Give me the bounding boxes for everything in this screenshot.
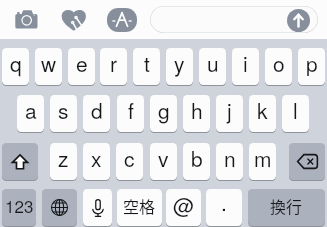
staticText: d xyxy=(91,95,103,125)
button[interactable]: b xyxy=(183,143,210,180)
staticText: o xyxy=(273,48,285,78)
staticText: v xyxy=(158,143,169,173)
staticText: 123 xyxy=(5,193,34,217)
button[interactable]: q xyxy=(2,48,29,85)
staticText: w xyxy=(41,48,57,78)
button[interactable]: g xyxy=(150,95,177,132)
staticText: u xyxy=(207,48,219,78)
staticText: . xyxy=(221,189,227,217)
button[interactable]: v xyxy=(150,143,177,180)
button[interactable]: l xyxy=(282,95,309,132)
button[interactable]: p xyxy=(298,48,325,85)
staticText: h xyxy=(191,95,203,125)
button[interactable]: a xyxy=(17,95,44,132)
button[interactable]: App Store xyxy=(107,8,137,32)
button[interactable]: . xyxy=(206,189,242,226)
button[interactable]: 空格 xyxy=(117,189,162,226)
staticText: r xyxy=(110,48,117,78)
button[interactable]: x xyxy=(83,143,110,180)
button[interactable]: d xyxy=(83,95,110,132)
button[interactable]: o xyxy=(265,48,292,85)
button[interactable]: m xyxy=(249,143,276,180)
button[interactable]: f xyxy=(117,95,144,132)
button[interactable]: Shift xyxy=(2,143,38,180)
staticText: e xyxy=(76,48,88,78)
button[interactable]: z xyxy=(50,143,77,180)
button[interactable]: u xyxy=(199,48,226,85)
button[interactable]: Digital Touch xyxy=(59,4,89,34)
button[interactable]: y xyxy=(166,48,193,85)
staticText: a xyxy=(25,95,37,125)
staticText: q xyxy=(10,48,22,78)
button[interactable]: c xyxy=(116,143,143,180)
staticText: j xyxy=(227,95,232,125)
staticText: b xyxy=(191,143,203,173)
staticText: z xyxy=(58,143,69,173)
staticText: m xyxy=(254,143,272,173)
button[interactable]: Dictation xyxy=(83,189,112,226)
staticText: k xyxy=(257,95,268,125)
button[interactable]: w xyxy=(35,48,62,85)
button[interactable]: h xyxy=(183,95,210,132)
staticText: l xyxy=(293,95,298,125)
button[interactable]: Send xyxy=(287,9,310,32)
staticText: g xyxy=(158,95,170,125)
staticText: 換行 xyxy=(270,194,303,217)
button[interactable] xyxy=(150,6,318,33)
button[interactable]: @ xyxy=(166,189,201,226)
button[interactable]: Camera xyxy=(11,4,41,34)
button[interactable]: r xyxy=(100,48,127,85)
button[interactable]: s xyxy=(50,95,77,132)
staticText: @ xyxy=(173,190,195,220)
staticText: x xyxy=(91,143,102,173)
button[interactable]: Switch keyboard xyxy=(42,189,77,226)
staticText: t xyxy=(144,48,150,78)
button[interactable]: i xyxy=(232,48,259,85)
staticText: f xyxy=(128,95,134,125)
staticText: p xyxy=(306,48,318,78)
staticText: i xyxy=(243,48,248,78)
button[interactable]: k xyxy=(249,95,276,132)
button[interactable]: 換行 xyxy=(248,189,325,226)
staticText: 空格 xyxy=(123,194,156,217)
staticText: y xyxy=(174,48,185,78)
button[interactable]: e xyxy=(68,48,95,85)
button[interactable]: Backspace xyxy=(289,143,325,180)
staticText: c xyxy=(124,143,135,173)
staticText: s xyxy=(58,95,69,125)
button[interactable]: 123 xyxy=(2,189,36,226)
button[interactable]: j xyxy=(216,95,243,132)
staticText: n xyxy=(224,143,236,173)
button[interactable]: n xyxy=(216,143,243,180)
button[interactable]: t xyxy=(133,48,160,85)
